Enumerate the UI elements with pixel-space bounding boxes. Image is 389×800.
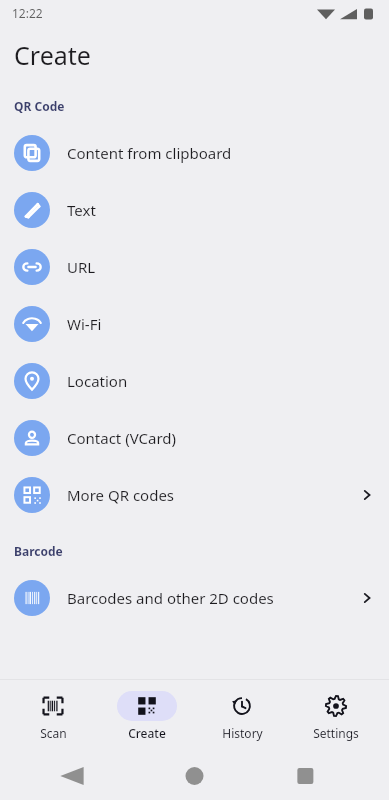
staticText: Scan bbox=[40, 725, 67, 741]
staticText: Barcode bbox=[14, 543, 63, 559]
staticText: QR Code bbox=[14, 98, 65, 114]
button[interactable]: More QR codes bbox=[0, 466, 389, 523]
button[interactable]: Wi-Fi bbox=[0, 295, 389, 352]
staticText: Barcodes and other 2D codes bbox=[67, 588, 274, 608]
staticText: More QR codes bbox=[67, 485, 175, 505]
button[interactable]: Create bbox=[106, 691, 188, 741]
button[interactable]: History bbox=[201, 691, 283, 741]
button[interactable]: Scan bbox=[12, 691, 94, 741]
button[interactable]: Settings bbox=[295, 691, 377, 741]
button[interactable]: Barcodes and other 2D codes bbox=[0, 569, 389, 626]
staticText: Create bbox=[14, 38, 91, 72]
staticText: History bbox=[222, 725, 263, 741]
button[interactable]: Location bbox=[0, 352, 389, 409]
staticText: Text bbox=[67, 200, 96, 220]
button[interactable]: Content from clipboard bbox=[0, 124, 389, 181]
staticText: 12:22 bbox=[12, 5, 43, 21]
staticText: Contact (VCard) bbox=[67, 428, 177, 448]
button[interactable]: Contact (VCard) bbox=[0, 409, 389, 466]
button[interactable]: Text bbox=[0, 181, 389, 238]
staticText: URL bbox=[67, 257, 96, 277]
staticText: Settings bbox=[313, 725, 359, 741]
button[interactable]: URL bbox=[0, 238, 389, 295]
staticText: Location bbox=[67, 371, 128, 391]
staticText: Create bbox=[128, 725, 166, 741]
staticText: Wi-Fi bbox=[67, 314, 102, 334]
staticText: Content from clipboard bbox=[67, 143, 232, 163]
